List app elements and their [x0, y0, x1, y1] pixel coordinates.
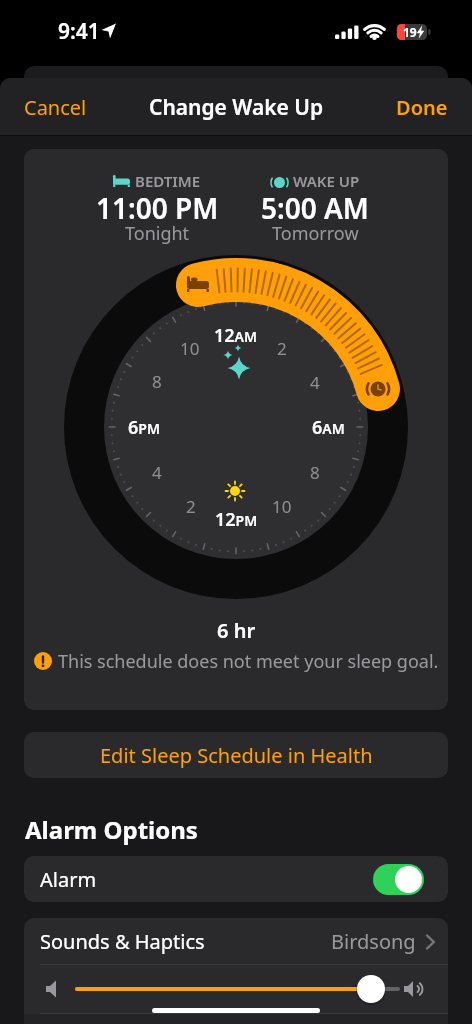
- staticText: 6 hr: [217, 617, 256, 644]
- staticText: WAKE UP: [293, 171, 360, 191]
- button[interactable]: Sounds & Haptics: [24, 918, 448, 964]
- staticText: Edit Sleep Schedule in Health: [100, 742, 373, 769]
- button[interactable]: [373, 864, 424, 895]
- staticText: Alarm: [40, 866, 97, 893]
- staticText: Tomorrow: [272, 221, 359, 245]
- staticText: 4: [310, 371, 320, 394]
- staticText: 2: [277, 337, 287, 360]
- staticText: 6AM: [312, 415, 345, 440]
- button[interactable]: Alarm: [24, 856, 448, 902]
- button[interactable]: [24, 964, 448, 1014]
- staticText: 9:41: [58, 17, 100, 45]
- staticText: 8: [310, 461, 320, 484]
- staticText: Done: [396, 94, 448, 121]
- staticText: Birdsong: [331, 928, 416, 955]
- staticText: 12AM: [214, 323, 258, 348]
- staticText: Sounds & Haptics: [40, 928, 205, 955]
- staticText: 12PM: [215, 507, 258, 532]
- button[interactable]: Edit Sleep Schedule in Health: [24, 732, 448, 778]
- staticText: This schedule does not meet your sleep g…: [58, 649, 439, 674]
- staticText: Alarm Options: [25, 813, 198, 846]
- staticText: Change Wake Up: [149, 93, 324, 122]
- button[interactable]: Cancel: [24, 94, 87, 121]
- staticText: BEDTIME: [135, 171, 201, 191]
- staticText: Tonight: [125, 221, 190, 245]
- staticText: 8: [152, 370, 162, 393]
- staticText: 10: [180, 337, 200, 360]
- staticText: 2: [186, 495, 196, 518]
- staticText: Cancel: [24, 94, 87, 121]
- button[interactable]: Done: [396, 94, 448, 121]
- staticText: 10: [272, 495, 292, 518]
- staticText: 5:00 AM: [261, 189, 369, 223]
- staticText: 6PM: [128, 415, 160, 440]
- staticText: 11:00 PM: [96, 189, 219, 223]
- staticText: 4: [152, 461, 162, 484]
- staticText: 19: [403, 24, 417, 40]
